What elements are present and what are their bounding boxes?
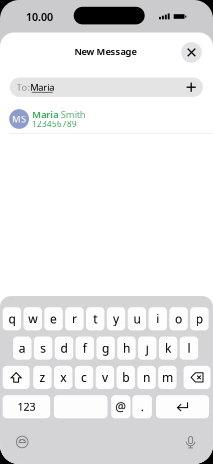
button[interactable]: MS xyxy=(0,0,213,464)
button[interactable]: w xyxy=(23,307,42,330)
staticText: 123 xyxy=(17,400,35,414)
staticText: Smith xyxy=(61,108,86,120)
button[interactable]: o xyxy=(169,307,188,330)
staticText: New Message xyxy=(74,45,136,58)
staticText: m xyxy=(162,369,173,385)
button[interactable]: Emoji xyxy=(11,431,33,453)
staticText: a xyxy=(19,340,26,356)
staticText: k xyxy=(165,340,171,356)
button[interactable]: b xyxy=(116,366,135,389)
staticText: g xyxy=(102,340,109,356)
staticText: p xyxy=(196,311,203,327)
button[interactable]: Close xyxy=(181,42,202,63)
staticText: 123456789 xyxy=(32,119,77,129)
button[interactable]: m xyxy=(158,366,177,389)
button[interactable]: q xyxy=(3,307,21,330)
button[interactable]: t xyxy=(86,307,104,330)
staticText: h xyxy=(123,340,130,356)
staticText: q xyxy=(8,311,15,327)
staticText: y xyxy=(113,311,119,327)
button[interactable]: x xyxy=(54,366,72,389)
button[interactable]: Add recipient xyxy=(183,79,200,96)
button[interactable]: s xyxy=(34,336,52,360)
button[interactable]: i xyxy=(148,307,167,330)
button[interactable]: e xyxy=(44,307,63,330)
staticText: f xyxy=(83,340,87,356)
staticText: d xyxy=(60,340,67,356)
button[interactable]: f xyxy=(76,336,94,360)
button[interactable]: Shift xyxy=(3,366,30,389)
button[interactable]: Dictate xyxy=(180,430,201,454)
button[interactable]: Delete xyxy=(184,366,210,389)
staticText: o xyxy=(175,311,182,327)
staticText: w xyxy=(28,311,37,327)
button[interactable]: k xyxy=(159,336,177,360)
staticText: c xyxy=(81,369,87,385)
staticText: e xyxy=(50,311,57,327)
staticText: u xyxy=(133,311,140,327)
staticText: x xyxy=(60,369,66,385)
button[interactable]: n xyxy=(137,366,156,389)
staticText: v xyxy=(102,369,108,385)
staticText: @ xyxy=(115,399,126,415)
button[interactable]: r xyxy=(65,307,84,330)
staticText: MS xyxy=(12,113,26,125)
staticText: To: xyxy=(16,81,30,93)
button[interactable]: g xyxy=(96,336,115,360)
button[interactable]: v xyxy=(96,366,114,389)
button[interactable]: 123 xyxy=(3,395,50,418)
staticText: r xyxy=(72,311,77,327)
button[interactable] xyxy=(54,395,107,418)
button[interactable]: h xyxy=(117,336,136,360)
staticText: j xyxy=(146,340,149,356)
staticText: . xyxy=(141,399,144,415)
button[interactable]: y xyxy=(107,307,125,330)
button[interactable]: p xyxy=(190,307,209,330)
staticText: t xyxy=(93,311,97,327)
button[interactable]: d xyxy=(55,336,73,360)
button[interactable]: u xyxy=(128,307,146,330)
button[interactable]: Return xyxy=(156,395,209,418)
staticText: l xyxy=(187,340,190,356)
button[interactable]: l xyxy=(180,336,198,360)
staticText: n xyxy=(143,369,150,385)
button[interactable]: c xyxy=(75,366,93,389)
staticText: b xyxy=(122,369,129,385)
button[interactable]: @ xyxy=(111,395,130,418)
staticText: 10.00 xyxy=(26,10,53,24)
button[interactable]: a xyxy=(13,336,31,360)
staticText: s xyxy=(40,340,46,356)
staticText: Maria xyxy=(30,81,54,93)
staticText: i xyxy=(156,311,159,327)
button[interactable]: . xyxy=(132,395,152,418)
staticText: z xyxy=(39,369,45,385)
button[interactable]: z xyxy=(33,366,52,389)
staticText: Maria xyxy=(32,108,58,120)
button[interactable]: j xyxy=(138,336,156,360)
